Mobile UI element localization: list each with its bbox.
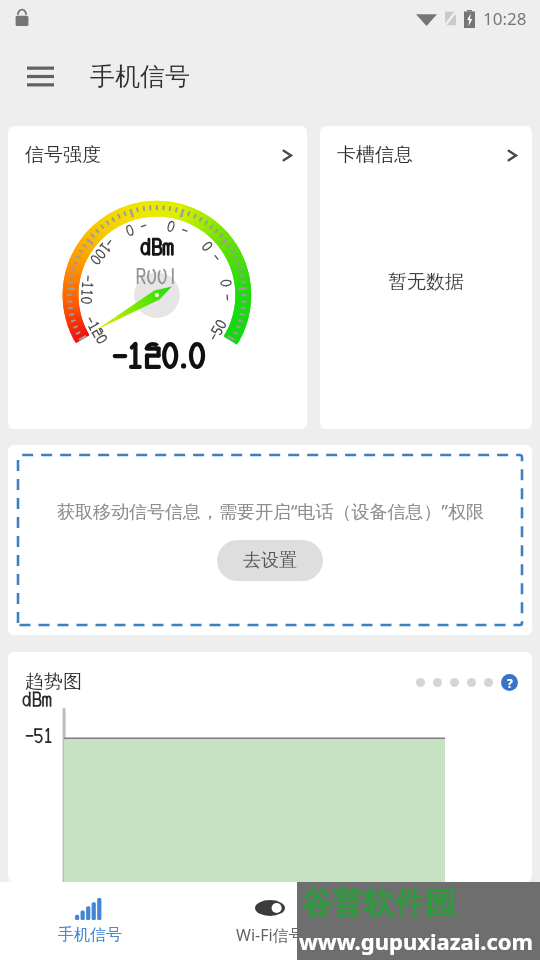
staticText: 获取移动信号信息，需要开启“电话（设备信息）”权限 [57,499,484,524]
button[interactable]: Menu [14,50,66,102]
staticText: 趋势图 [25,670,82,694]
staticText: 更多 [434,925,466,945]
button[interactable]: 更多 [360,882,540,960]
button[interactable]: 手机信号 [0,882,180,960]
button[interactable]: 信号强度 [8,126,307,429]
staticText: 10:28 [483,7,527,30]
staticText: 信号强度 [25,143,101,167]
staticText: 卡槽信息 [337,143,413,167]
staticText: 暂无数据 [388,270,464,294]
staticText: 去设置 [243,549,297,572]
button[interactable]: Wi-Fi信号 [180,882,360,960]
staticText: 手机信号 [90,61,190,92]
staticText: www.gupuxiazai.com [299,926,534,956]
button[interactable]: 卡槽信息 [320,126,532,429]
staticText: Wi-Fi信号 [236,924,305,946]
button[interactable]: 趋势图 [8,652,532,882]
staticText: 谷普软件园 [301,884,456,923]
button[interactable]: 去设置 [217,540,323,581]
staticText: ? [507,675,513,691]
staticText: 手机信号 [58,925,122,945]
button[interactable]: Help [501,674,518,691]
